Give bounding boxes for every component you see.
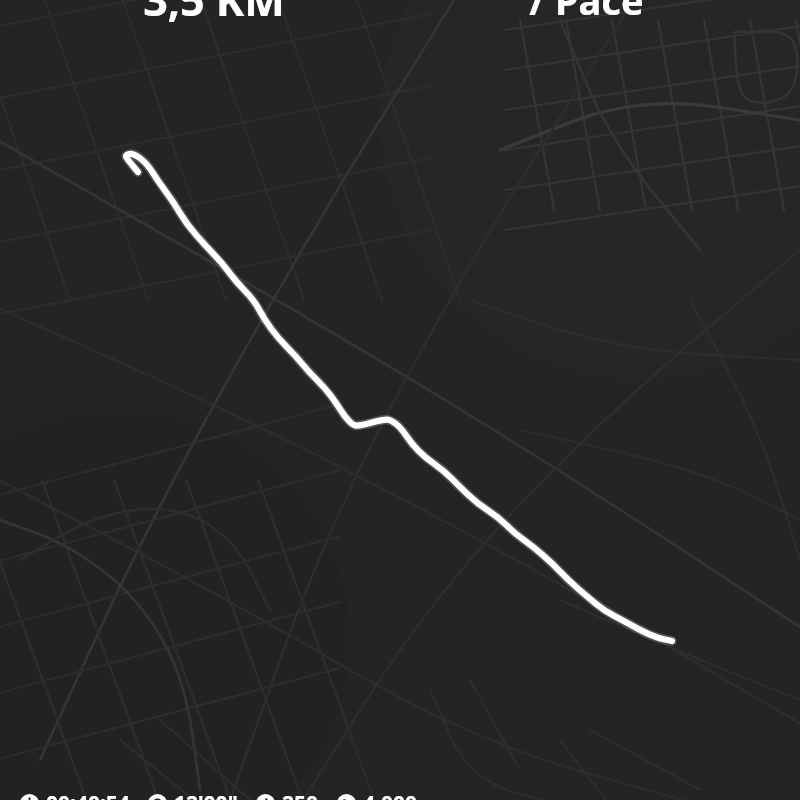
button[interactable]: / Pace — [400, 0, 772, 26]
button[interactable]: Calories — [252, 789, 323, 800]
button[interactable]: Steps — [333, 789, 421, 800]
other: Duration — [20, 794, 39, 800]
staticText: / Pace — [529, 0, 644, 26]
button[interactable]: 3,5 KM — [28, 0, 400, 29]
staticText: 4.000 — [363, 789, 417, 800]
other: Pace — [148, 794, 167, 800]
button[interactable]: Pace — [144, 789, 242, 800]
button[interactable]: Duration — [16, 789, 134, 800]
other: Calories — [256, 794, 275, 800]
other: Steps — [337, 794, 356, 800]
staticText: 00:40:54 — [46, 789, 130, 800]
staticText: 12'00" — [174, 789, 238, 800]
staticText: 3,5 KM — [143, 0, 285, 29]
staticText: 250 — [282, 789, 319, 800]
